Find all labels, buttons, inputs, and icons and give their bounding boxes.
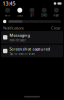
staticText: Messaging <box>9 33 29 38</box>
button[interactable]: DND <box>38 8 50 17</box>
button[interactable]: Flash <box>50 8 62 17</box>
button[interactable]: BT <box>26 8 38 17</box>
staticText: Notifications <box>3 25 24 31</box>
button[interactable]: Wi-Fi <box>1 8 14 17</box>
staticText: Clear <box>51 25 61 31</box>
staticText: Tap to view or share <box>9 52 35 56</box>
button[interactable]: Data <box>14 8 26 17</box>
staticText: BT <box>30 14 33 17</box>
staticText: New message <box>9 38 26 42</box>
staticText: Data <box>17 14 22 17</box>
staticText: Wi-Fi <box>5 14 11 17</box>
staticText: DND <box>41 14 47 17</box>
button[interactable]: Messaging <box>0 31 64 45</box>
staticText: Flash <box>53 14 59 17</box>
button[interactable]: Clear <box>51 25 61 31</box>
staticText: 13:45 <box>2 0 15 7</box>
button[interactable]: Screenshot captured <box>0 45 64 58</box>
staticText: Screenshot captured <box>9 46 49 52</box>
